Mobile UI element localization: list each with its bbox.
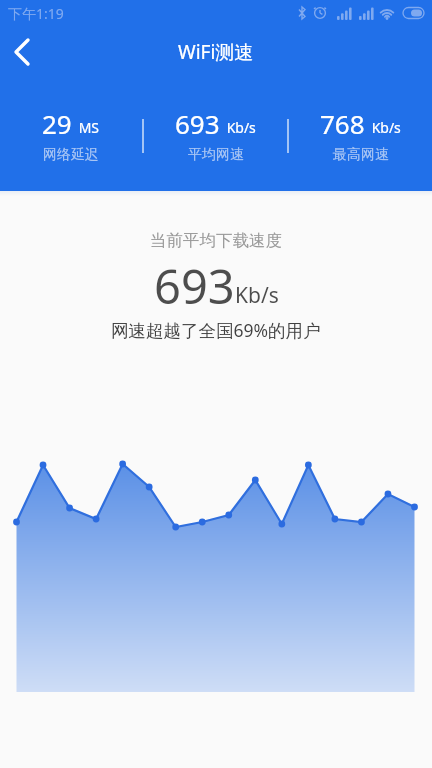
staticText: 693: [175, 106, 220, 141]
staticText: 当前平均下载速度: [150, 230, 282, 251]
staticText: Kb/s: [235, 281, 279, 310]
staticText: 网速超越了全国69%的用户: [111, 318, 321, 342]
staticText: 平均网速: [188, 146, 244, 164]
staticText: Kb/s: [368, 118, 401, 137]
staticText: 693: [154, 254, 235, 318]
staticText: 最高网速: [333, 146, 389, 164]
button[interactable]: [0, 30, 44, 74]
staticText: 768: [320, 106, 365, 141]
staticText: Kb/s: [223, 118, 256, 137]
staticText: 网络延迟: [43, 146, 99, 164]
staticText: MS: [75, 118, 100, 137]
staticText: 下午1:19: [8, 4, 64, 23]
staticText: 29: [42, 106, 72, 141]
staticText: WiFi测速: [178, 39, 254, 65]
